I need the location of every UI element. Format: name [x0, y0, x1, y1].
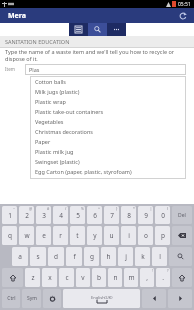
staticText: Vegetables — [35, 118, 64, 125]
staticText: Sym — [27, 295, 37, 302]
staticText: English(UK) — [91, 295, 113, 300]
button[interactable]: l — [152, 247, 167, 266]
staticText: c — [65, 273, 69, 282]
staticText: 05:51 — [178, 1, 191, 8]
button[interactable]: . — [156, 268, 170, 287]
staticText: t — [76, 231, 79, 240]
button[interactable]: n — [108, 268, 122, 287]
button[interactable]: Plastic milk jug — [30, 146, 186, 156]
staticText: v — [81, 273, 85, 282]
staticText: d — [54, 252, 58, 261]
staticText: Christmas decorations — [35, 128, 93, 135]
button[interactable]: a — [12, 247, 28, 266]
button[interactable]: Plastic take-out containers — [30, 106, 186, 116]
button[interactable]: 6 — [87, 206, 102, 224]
staticText: % — [81, 206, 84, 211]
button[interactable]: 3 — [36, 206, 51, 224]
staticText: Del — [178, 212, 186, 219]
button[interactable]: f — [66, 247, 82, 266]
button[interactable]: English(UK) — [63, 289, 140, 308]
button[interactable]: y — [87, 226, 102, 245]
staticText: j — [125, 252, 127, 261]
button[interactable]: Vegetables — [30, 116, 186, 126]
button[interactable]: Sym — [22, 289, 41, 308]
button[interactable]: More — [107, 23, 126, 36]
button[interactable]: , — [140, 268, 154, 287]
staticText: Plastic take-out containers — [35, 108, 104, 115]
staticText: Milk jugs (plastic) — [35, 88, 80, 95]
button[interactable]: 2 — [19, 206, 34, 224]
button[interactable]: s — [30, 247, 46, 266]
staticText: f — [73, 252, 76, 261]
button[interactable]: Swingset (plastic) — [30, 156, 186, 166]
button[interactable]: Paper — [30, 136, 186, 146]
button[interactable]: j — [118, 247, 133, 266]
button[interactable]: c — [59, 268, 74, 287]
button[interactable]: k — [135, 247, 150, 266]
button[interactable]: List — [69, 23, 88, 36]
button[interactable]: shift — [2, 268, 23, 287]
button[interactable]: settings — [43, 289, 61, 308]
button[interactable]: search — [169, 247, 192, 266]
button[interactable]: Ctrl — [2, 289, 20, 308]
button[interactable]: v — [76, 268, 90, 287]
button[interactable]: right — [168, 289, 192, 308]
button[interactable]: e — [36, 226, 51, 245]
button[interactable]: 8 — [121, 206, 136, 224]
button[interactable]: 1 — [2, 206, 17, 224]
staticText: u — [109, 231, 114, 240]
staticText: @ — [29, 206, 33, 211]
button[interactable]: r — [53, 226, 68, 245]
button[interactable]: t — [70, 226, 85, 245]
button[interactable]: Refresh — [177, 10, 189, 22]
staticText: / — [65, 206, 67, 211]
button[interactable]: Plas — [25, 64, 186, 75]
button[interactable]: w — [19, 226, 34, 245]
button[interactable]: backspace — [172, 226, 192, 245]
button[interactable]: i — [121, 226, 136, 245]
button[interactable]: 0 — [155, 206, 170, 224]
button[interactable]: o — [138, 226, 153, 245]
button[interactable]: Del — [172, 206, 192, 224]
button[interactable]: u — [104, 226, 119, 245]
staticText: ( — [167, 206, 169, 211]
staticText: ? — [167, 268, 169, 273]
button[interactable]: 7 — [104, 206, 119, 224]
staticText: Item — [5, 66, 15, 72]
button[interactable]: Cotton balls — [30, 76, 186, 86]
staticText: Plastic wrap — [35, 98, 66, 105]
staticText: Paper — [35, 138, 51, 145]
button[interactable]: Search — [88, 23, 107, 36]
button[interactable]: z — [25, 268, 40, 287]
button[interactable]: p — [155, 226, 170, 245]
staticText: Egg Carton (paper, plastic, styrofoam) — [35, 168, 132, 175]
staticText: Mera — [8, 11, 26, 21]
staticText: 9 — [144, 211, 148, 220]
button[interactable]: Christmas decorations — [30, 126, 186, 136]
staticText: ! — [152, 268, 153, 273]
button[interactable]: shift — [172, 268, 192, 287]
button[interactable]: q — [2, 226, 17, 245]
button[interactable]: x — [42, 268, 57, 287]
button[interactable]: m — [124, 268, 138, 287]
staticText: 4 — [59, 211, 63, 220]
button[interactable]: 9 — [138, 206, 153, 224]
staticText: | — [150, 206, 152, 211]
button[interactable]: 5 — [70, 206, 85, 224]
staticText: 3 — [42, 211, 46, 220]
button[interactable]: g — [84, 247, 99, 266]
button[interactable]: Plastic wrap — [30, 96, 186, 106]
staticText: 7 — [110, 211, 114, 220]
staticText: k — [141, 252, 145, 261]
staticText: Plastic milk jug — [35, 148, 74, 155]
button[interactable]: d — [48, 247, 64, 266]
staticText: a — [18, 252, 22, 261]
staticText: h — [106, 252, 111, 261]
button[interactable]: b — [92, 268, 106, 287]
button[interactable]: Milk jugs (plastic) — [30, 86, 186, 96]
staticText: 5 — [76, 211, 80, 220]
button[interactable]: left — [142, 289, 166, 308]
button[interactable]: h — [101, 247, 116, 266]
button[interactable]: Egg Carton (paper, plastic, styrofoam) — [30, 166, 186, 176]
button[interactable]: 4 — [53, 206, 68, 224]
